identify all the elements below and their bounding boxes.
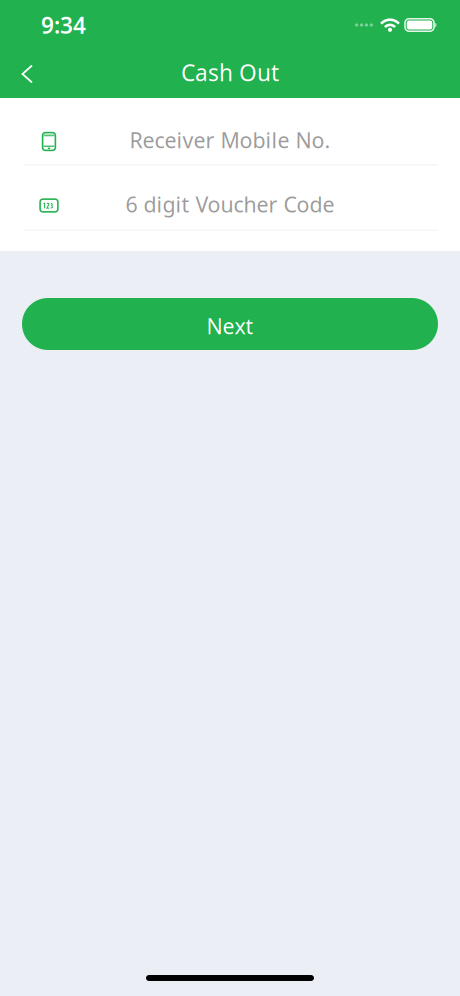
button[interactable]: Next — [22, 298, 438, 350]
staticText: 9:34 — [41, 10, 86, 40]
button[interactable]: Back — [0, 50, 50, 98]
staticText: Next — [206, 312, 253, 340]
staticText: Cash Out — [181, 57, 279, 87]
button[interactable]: Receiver Mobile No. — [0, 98, 460, 164]
button[interactable]: 6 digit Voucher Code — [0, 165, 460, 229]
staticText: 6 digit Voucher Code — [125, 190, 334, 218]
staticText: Receiver Mobile No. — [129, 126, 330, 154]
